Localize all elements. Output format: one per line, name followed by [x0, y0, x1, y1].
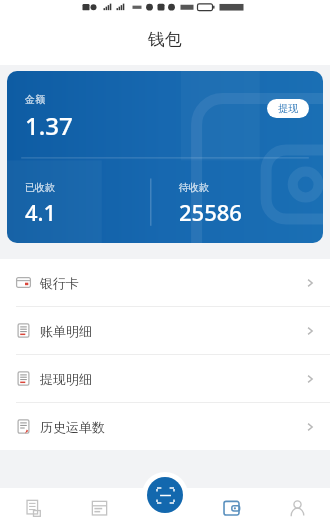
- button[interactable]: Waybills: [66, 488, 132, 522]
- staticText: 账单明细: [40, 323, 92, 339]
- button[interactable]: Wallet: [198, 488, 264, 522]
- staticText: 提现: [278, 102, 298, 115]
- button[interactable]: 历史运单数: [0, 403, 330, 450]
- staticText: 金额: [25, 93, 45, 106]
- button[interactable]: 提现明细: [0, 355, 330, 402]
- button[interactable]: 账单明细: [0, 307, 330, 354]
- button[interactable]: Orders: [0, 488, 66, 522]
- staticText: 待收款: [179, 181, 209, 194]
- staticText: 银行卡: [40, 275, 79, 291]
- staticText: 1.37: [25, 109, 73, 142]
- staticText: 4.1: [25, 197, 57, 227]
- button[interactable]: Profile: [264, 488, 330, 522]
- button[interactable]: 银行卡: [0, 259, 330, 306]
- button[interactable]: 提现: [267, 99, 309, 118]
- staticText: 历史运单数: [40, 419, 105, 435]
- staticText: 提现明细: [40, 371, 92, 387]
- button[interactable]: Scan: [147, 477, 183, 513]
- staticText: 钱包: [148, 29, 182, 50]
- staticText: 25586: [179, 197, 242, 227]
- staticText: 已收款: [25, 181, 55, 194]
